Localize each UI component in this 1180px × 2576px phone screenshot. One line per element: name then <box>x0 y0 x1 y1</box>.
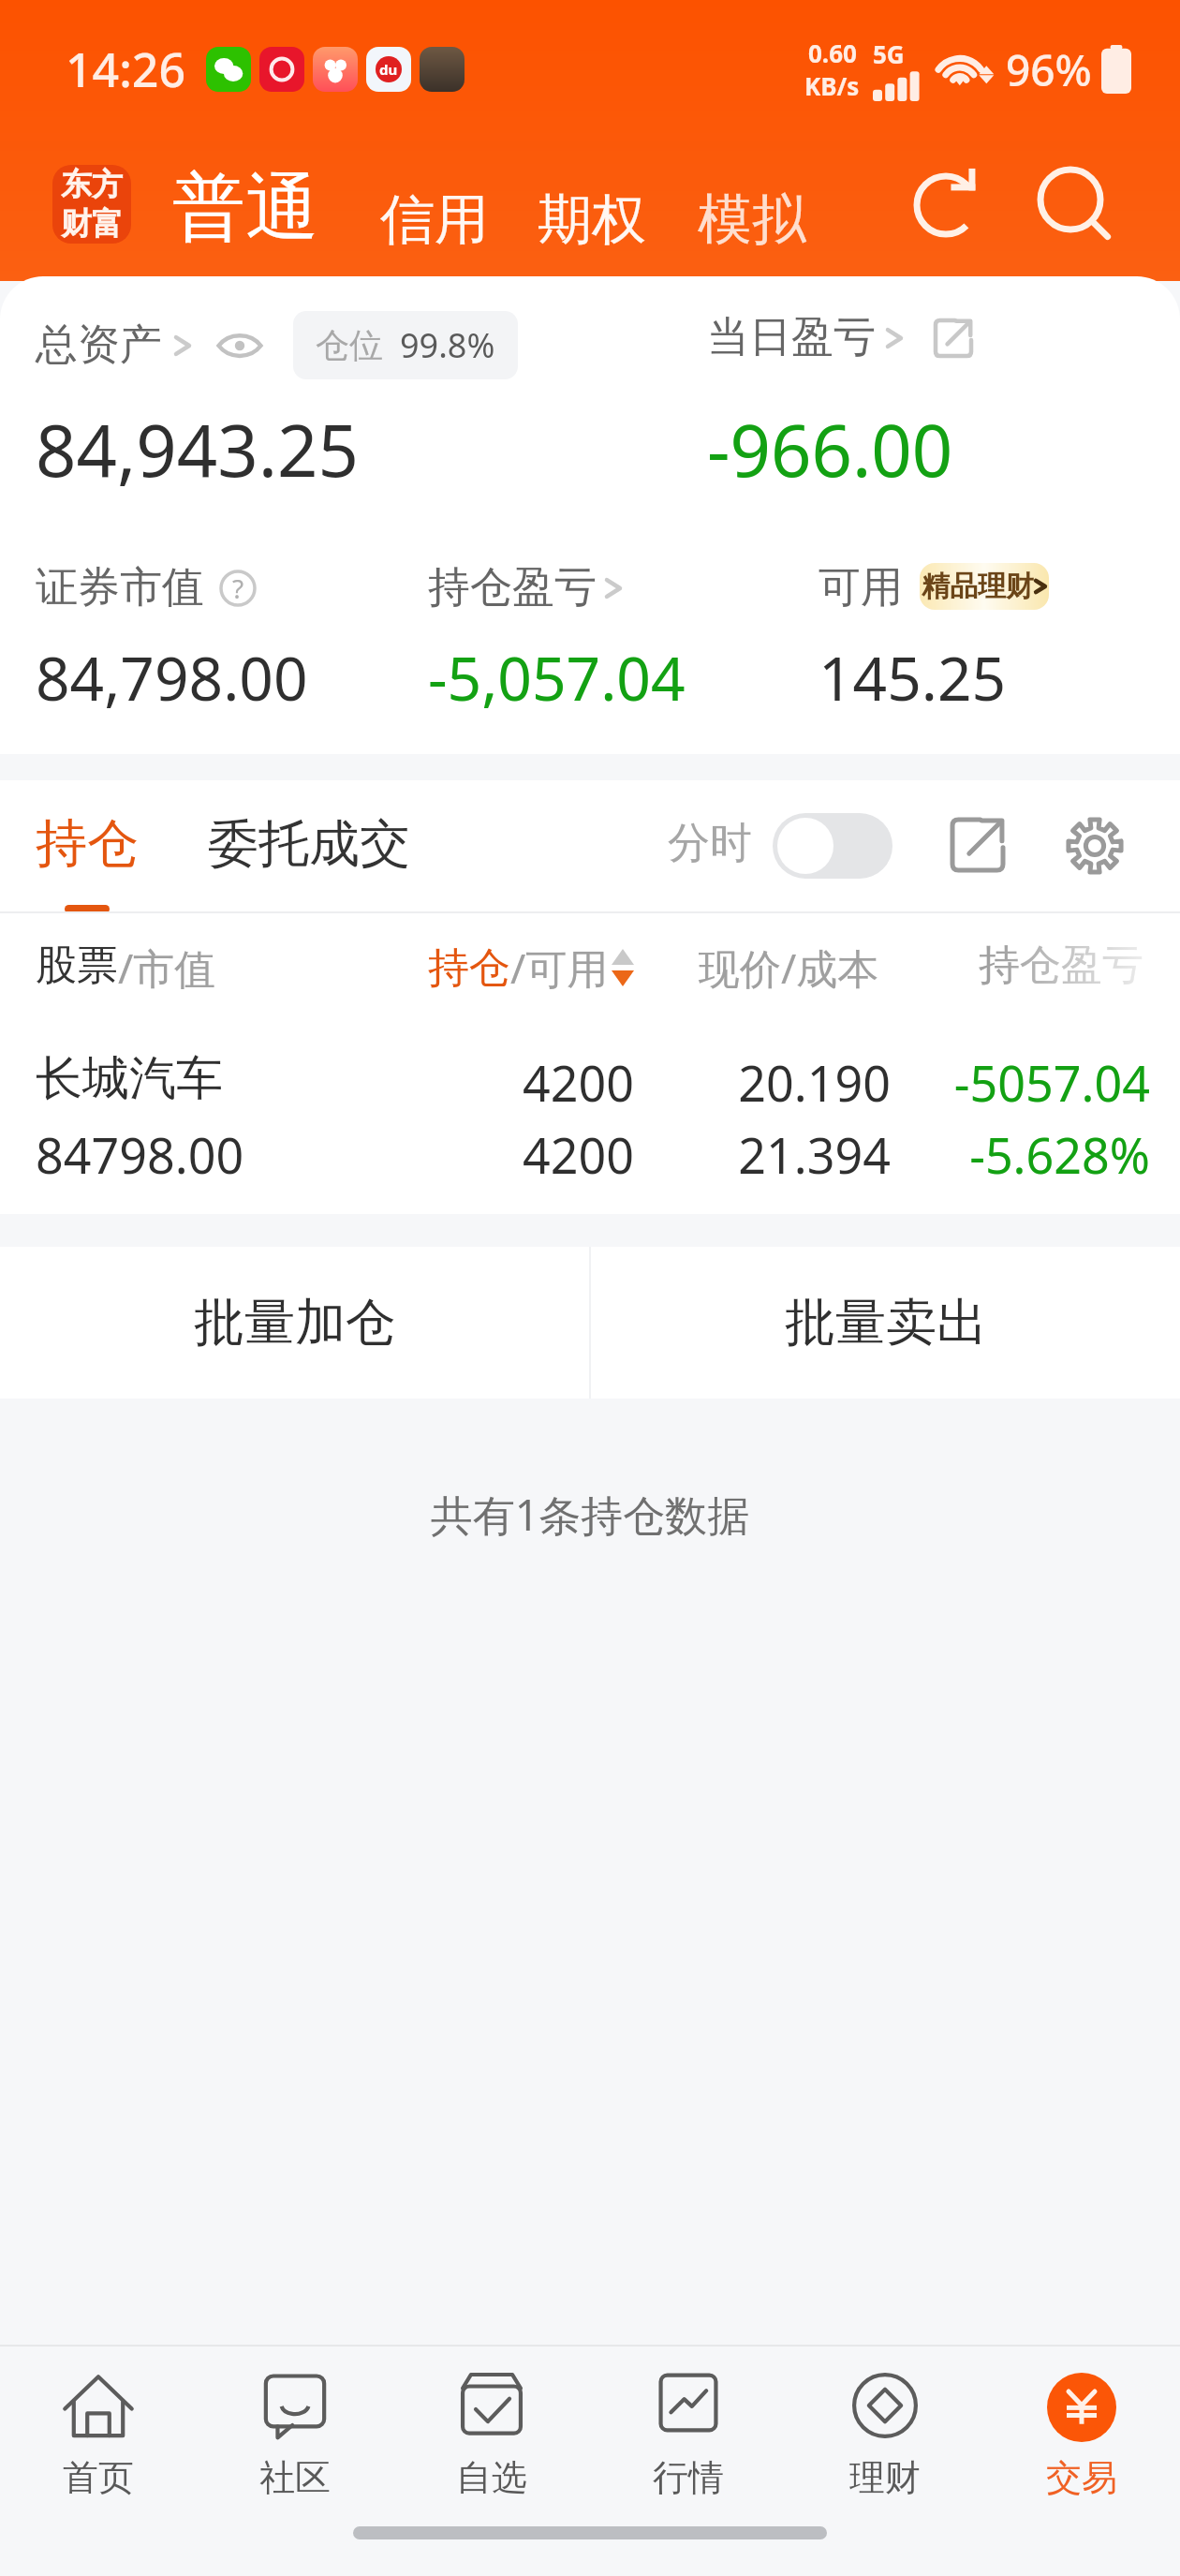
button[interactable]: 行情 <box>590 2347 787 2509</box>
staticText: -5.628% <box>0 1121 1150 1188</box>
button[interactable]: 持仓 <box>36 811 139 913</box>
button[interactable]: 社区 <box>197 2347 393 2509</box>
staticText: 批量加仓 <box>194 1291 396 1355</box>
button[interactable]: Search <box>1030 159 1120 249</box>
staticText: 96% <box>1006 40 1092 99</box>
staticText: 期权 <box>538 185 646 254</box>
staticText: 社区 <box>259 2455 331 2500</box>
staticText: 股票 <box>36 940 118 991</box>
button[interactable]: Toggle visibility <box>216 327 263 364</box>
staticText: 14:26 <box>66 37 185 101</box>
staticText: -5057.04 <box>0 1049 1150 1116</box>
staticText: 持仓 <box>428 942 510 994</box>
staticText: 长城汽车 <box>36 1049 223 1108</box>
staticText: ? <box>232 570 244 606</box>
staticText: 批量卖出 <box>785 1291 987 1355</box>
staticText: 共有1条持仓数据 <box>0 1486 1180 1543</box>
staticText: 财富 <box>61 204 123 244</box>
button[interactable]: Settings <box>1060 811 1129 881</box>
staticText: 模拟 <box>698 185 806 254</box>
button[interactable]: East Money <box>52 165 131 244</box>
staticText: 99.8% <box>400 322 495 368</box>
staticText: 信用 <box>380 185 489 254</box>
button[interactable]: 自选 <box>393 2347 590 2509</box>
staticText: 普通 <box>172 162 318 254</box>
button[interactable]: 理财 <box>787 2347 983 2509</box>
staticText: du <box>379 60 398 79</box>
staticText: 84,943.25 <box>36 401 360 498</box>
staticText: 5G <box>873 37 905 70</box>
staticText: 持仓盈亏 <box>428 561 597 614</box>
staticText: 4200 <box>0 1121 634 1188</box>
staticText: 委托成交 <box>208 812 410 876</box>
staticText: 交易 <box>1046 2455 1117 2500</box>
button[interactable]: 普通 <box>172 162 318 254</box>
staticText: 自选 <box>456 2455 527 2500</box>
button[interactable]: 当日盈亏 <box>707 311 904 364</box>
staticText: 20.190 <box>0 1049 891 1116</box>
button[interactable]: 交易 <box>983 2347 1180 2509</box>
button[interactable]: 模拟 <box>698 185 806 254</box>
staticText: /可用 <box>510 940 609 996</box>
staticText: 仓位 <box>316 324 383 366</box>
staticText: 东方 <box>61 165 123 204</box>
staticText: 理财 <box>849 2455 921 2500</box>
button[interactable]: 总资产 <box>36 318 192 372</box>
staticText: 84,798.00 <box>36 637 308 718</box>
button[interactable]: 批量卖出 <box>591 1247 1180 1399</box>
staticText: 当日盈亏 <box>707 311 876 364</box>
button[interactable]: Expand <box>944 811 1011 879</box>
button[interactable]: 持仓盈亏 <box>428 561 623 614</box>
button[interactable]: 首页 <box>0 2347 197 2509</box>
button[interactable]: 仓位 <box>293 311 518 379</box>
button[interactable]: 分时 <box>668 817 752 870</box>
staticText: 分时 <box>668 817 752 870</box>
button[interactable]: 委托成交 <box>208 812 410 876</box>
staticText: 证券市值 <box>36 561 204 614</box>
button[interactable]: 批量加仓 <box>0 1247 589 1399</box>
staticText: 行情 <box>653 2455 724 2500</box>
staticText: 0.60 <box>808 37 857 69</box>
staticText: 持仓盈亏 <box>979 940 1143 991</box>
staticText: KB/s <box>804 69 860 102</box>
button[interactable]: 期权 <box>538 185 646 254</box>
staticText: 首页 <box>63 2455 134 2500</box>
staticText: 84798.00 <box>36 1121 244 1188</box>
staticText: 持仓 <box>36 811 139 876</box>
staticText: -966.00 <box>707 401 953 498</box>
button[interactable]: 精品理财 <box>920 563 1049 610</box>
staticText: 精品理财 <box>922 569 1034 604</box>
button[interactable]: 信用 <box>380 185 489 254</box>
staticText: 现价/成本 <box>699 940 879 996</box>
staticText: 可用 <box>819 561 903 614</box>
staticText: 总资产 <box>36 318 162 372</box>
button[interactable]: 持仓 <box>428 940 634 996</box>
button[interactable]: Time sharing toggle <box>773 813 892 879</box>
staticText: 21.394 <box>0 1121 891 1188</box>
staticText: 145.25 <box>819 637 1007 718</box>
staticText: -5,057.04 <box>428 637 686 718</box>
button[interactable]: Refresh <box>904 159 994 249</box>
button[interactable]: Open detail <box>928 313 979 363</box>
staticText: 4200 <box>0 1049 634 1116</box>
staticText: /市值 <box>118 940 216 996</box>
button[interactable]: 长城汽车 <box>0 1039 1180 1207</box>
